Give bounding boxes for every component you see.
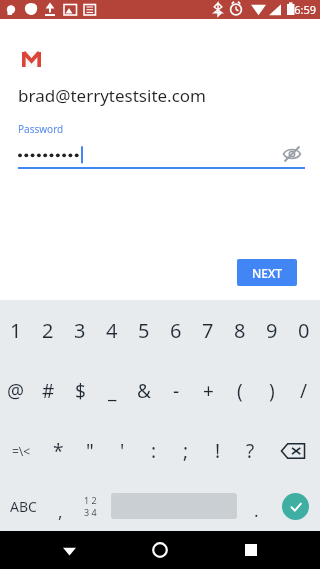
staticText: &: [137, 378, 151, 404]
staticText: 2: [42, 317, 54, 344]
staticText: 4: [106, 317, 118, 344]
staticText: Password: [18, 122, 64, 136]
staticText: 9: [266, 317, 278, 344]
staticText: +: [203, 378, 214, 404]
staticText: 7: [202, 317, 214, 344]
button[interactable]: +: [192, 361, 224, 421]
button[interactable]: 3: [64, 300, 96, 361]
button[interactable]: #: [32, 361, 64, 421]
staticText: NEXT: [252, 265, 283, 281]
staticText: =\<: [12, 443, 31, 459]
staticText: brad@terrytestsite.com: [18, 84, 207, 107]
button[interactable]: 0: [288, 300, 320, 361]
staticText: ;: [183, 438, 189, 464]
button[interactable]: 5: [128, 300, 160, 361]
staticText: 16:59: [288, 2, 317, 17]
staticText: 6: [170, 317, 182, 344]
staticText: ABC: [10, 497, 37, 516]
button[interactable]: .: [242, 481, 270, 531]
button[interactable]: Space: [106, 481, 242, 531]
button[interactable]: ": [74, 421, 106, 481]
button[interactable]: &: [128, 361, 160, 421]
button[interactable]: Done: [270, 481, 320, 531]
button[interactable]: -: [160, 361, 192, 421]
button[interactable]: :: [138, 421, 170, 481]
staticText: ": [86, 438, 94, 464]
staticText: 0: [298, 317, 310, 344]
staticText: .: [254, 499, 259, 522]
button[interactable]: /: [288, 361, 320, 421]
button[interactable]: 7: [192, 300, 224, 361]
staticText: ): [269, 378, 275, 404]
button[interactable]: ): [256, 361, 288, 421]
button[interactable]: 4: [96, 300, 128, 361]
button[interactable]: Numbers: [74, 481, 106, 531]
button[interactable]: !: [202, 421, 234, 481]
staticText: #: [42, 378, 55, 404]
button[interactable]: 8: [224, 300, 256, 361]
staticText: 8: [234, 317, 246, 344]
staticText: /: [300, 378, 308, 404]
button[interactable]: ': [106, 421, 138, 481]
staticText: 3: [74, 317, 86, 344]
button[interactable]: Show password: [280, 142, 304, 166]
button[interactable]: =\<: [0, 421, 42, 481]
staticText: 1 2: [84, 494, 97, 506]
button[interactable]: NEXT: [237, 259, 297, 286]
staticText: 3 4: [84, 506, 97, 518]
staticText: -: [173, 378, 180, 404]
staticText: @: [7, 378, 25, 404]
button[interactable]: 2: [32, 300, 64, 361]
button[interactable]: @: [0, 361, 32, 421]
staticText: *: [53, 438, 64, 464]
staticText: (: [237, 378, 243, 404]
staticText: :: [151, 438, 157, 464]
button[interactable]: Backspace: [266, 421, 320, 481]
button[interactable]: ;: [170, 421, 202, 481]
button[interactable]: ABC: [0, 481, 47, 531]
button[interactable]: *: [42, 421, 74, 481]
button[interactable]: 6: [160, 300, 192, 361]
button[interactable]: Home: [138, 531, 182, 569]
staticText: ?: [246, 438, 255, 464]
button[interactable]: $: [64, 361, 96, 421]
staticText: !: [215, 438, 221, 464]
button[interactable]: 9: [256, 300, 288, 361]
staticText: _: [108, 378, 117, 404]
button[interactable]: (: [224, 361, 256, 421]
staticText: ': [120, 438, 125, 464]
button[interactable]: ,: [47, 481, 74, 531]
button[interactable]: 1: [0, 300, 32, 361]
button[interactable]: _: [96, 361, 128, 421]
staticText: $: [75, 378, 86, 404]
staticText: ,: [58, 500, 63, 523]
staticText: 5: [138, 317, 150, 344]
button[interactable]: Back: [47, 531, 91, 569]
button[interactable]: Recent apps: [229, 531, 273, 569]
button[interactable]: ?: [234, 421, 266, 481]
staticText: 1: [10, 317, 22, 344]
